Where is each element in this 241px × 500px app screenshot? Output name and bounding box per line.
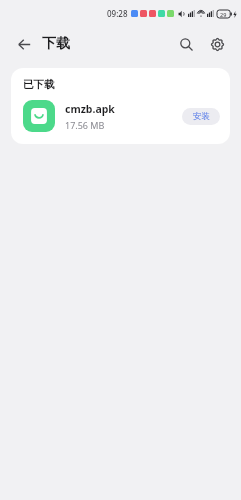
button[interactable]: cmzb.apk [23,100,220,132]
staticText: 29 [220,11,227,18]
staticText: 已下载 [23,78,55,91]
staticText: cmzb.apk [65,102,115,116]
staticText: 17.56 MB [65,119,105,131]
button[interactable]: 安装 [182,108,220,125]
button[interactable]: Back [10,30,38,58]
staticText: 安装 [193,111,210,122]
staticText: 09:28 [107,8,128,19]
button[interactable]: Settings [203,30,231,58]
button[interactable]: Search [172,30,200,58]
staticText: 下载 [42,35,70,53]
